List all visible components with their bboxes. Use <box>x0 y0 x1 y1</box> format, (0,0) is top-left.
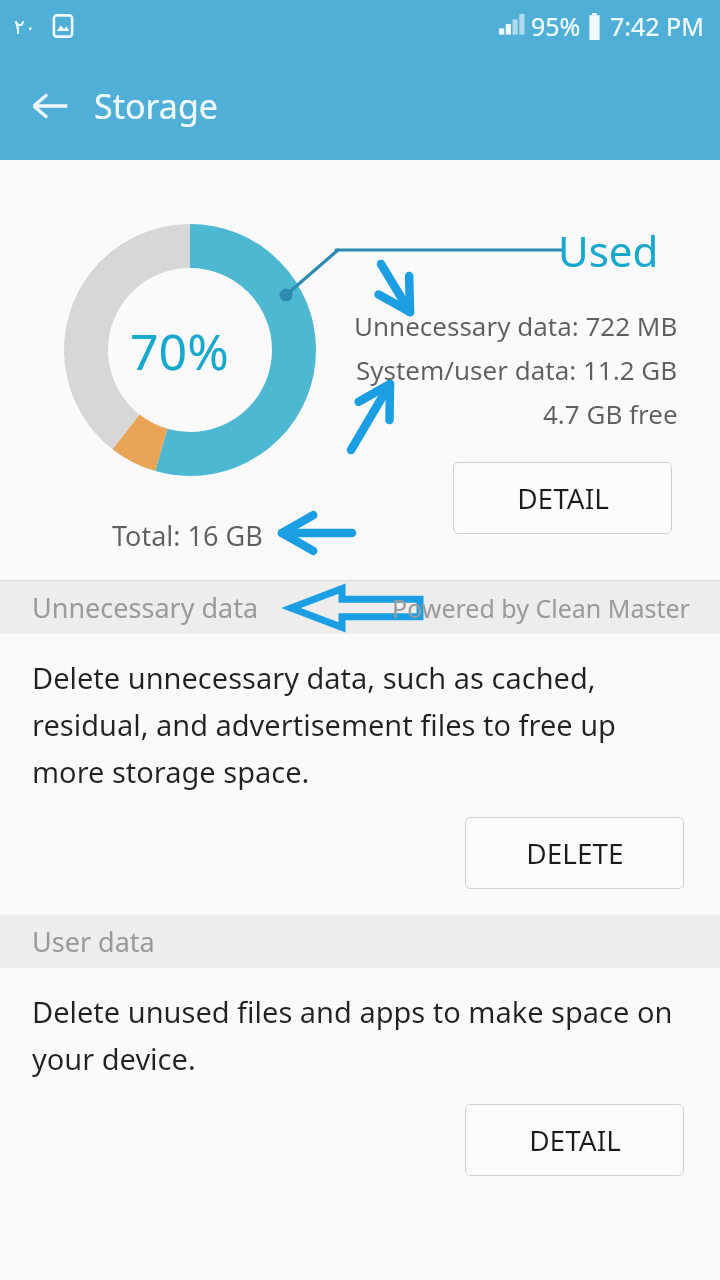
staticText: Total: 16 GB <box>112 517 263 554</box>
staticText: System/user data: 11.2 GB <box>356 352 678 387</box>
button[interactable]: DETAIL <box>465 1104 684 1176</box>
staticText: DETAIL <box>529 1121 621 1159</box>
staticText: DELETE <box>526 834 624 872</box>
staticText: Used <box>558 222 659 279</box>
staticText: DETAIL <box>517 479 609 517</box>
button[interactable]: Back <box>24 80 76 132</box>
staticText: Unnecessary data: 722 MB <box>354 308 678 343</box>
staticText: 70% <box>130 317 229 385</box>
staticText: User data <box>32 923 155 960</box>
staticText: Delete unused files and apps to make spa… <box>32 992 676 1078</box>
staticText: 95% <box>531 9 581 43</box>
staticText: Storage <box>94 83 219 129</box>
staticText: Powered by Clean Master <box>392 591 690 625</box>
button[interactable]: DELETE <box>465 817 684 889</box>
staticText: 7:42 PM <box>610 9 704 43</box>
staticText: 4.7 GB free <box>543 396 678 431</box>
staticText: Delete unnecessary data, such as cached,… <box>32 658 676 791</box>
staticText: ٢٠ <box>14 15 36 38</box>
button[interactable]: DETAIL <box>453 462 672 534</box>
staticText: Unnecessary data <box>32 589 259 626</box>
